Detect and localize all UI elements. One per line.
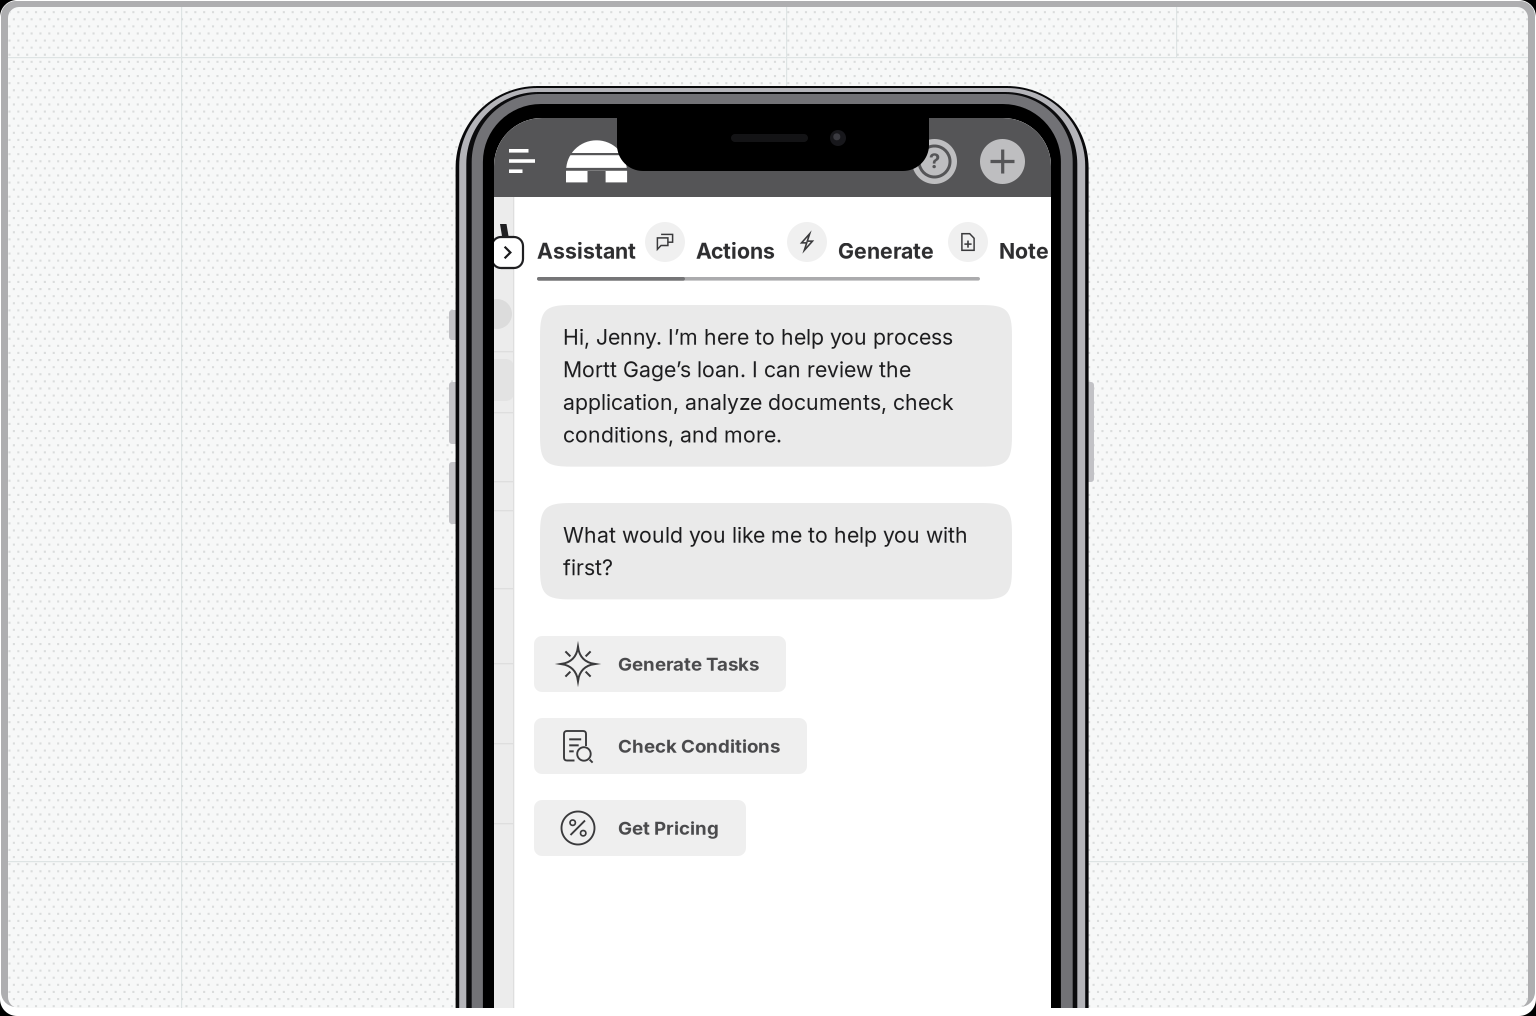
staticText: ? [929, 149, 940, 173]
staticText: Actions [696, 238, 775, 264]
button[interactable]: Assistant chat [645, 222, 685, 262]
button[interactable]: Generate [948, 222, 988, 262]
button[interactable]: New conversation [980, 139, 1025, 184]
button[interactable]: Note [999, 238, 1049, 264]
staticText: Hi, Jenny. I’m here to help you process … [563, 324, 954, 448]
button[interactable]: Generate [838, 238, 934, 264]
button[interactable]: Assistant [537, 238, 636, 264]
staticText: Assistant [537, 238, 636, 264]
button[interactable]: Help [912, 139, 957, 184]
staticText: Note [999, 238, 1049, 264]
button[interactable]: Actions [696, 238, 775, 264]
staticText: What would you like me to help you with … [563, 522, 968, 580]
staticText: Check Conditions [618, 735, 780, 757]
button[interactable]: Expand sidebar [492, 237, 523, 268]
button[interactable]: Get Pricing [534, 800, 746, 856]
staticText: Get Pricing [618, 817, 719, 839]
button[interactable]: Generate Tasks [534, 636, 786, 692]
button[interactable]: Menu [509, 149, 535, 173]
button[interactable]: Check Conditions [534, 718, 807, 774]
button[interactable]: Actions [787, 222, 827, 262]
staticText: Generate Tasks [618, 653, 759, 675]
staticText: Generate [838, 238, 934, 264]
